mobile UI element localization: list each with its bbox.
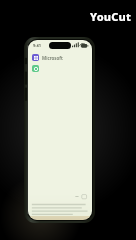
button[interactable]: Microsoft bbox=[32, 54, 88, 61]
staticText: Microsoft bbox=[42, 55, 63, 61]
staticText: YouCut bbox=[90, 9, 132, 24]
staticText: 9:41 bbox=[33, 43, 41, 48]
button[interactable]: YouCut watermark bbox=[90, 9, 132, 24]
button[interactable]: Messaging app bbox=[32, 65, 92, 72]
